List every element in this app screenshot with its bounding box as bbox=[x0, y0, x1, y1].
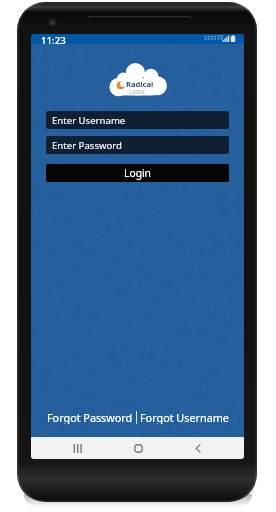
button[interactable]: Recent apps bbox=[62, 437, 92, 459]
button[interactable]: Forgot Password bbox=[44, 406, 136, 428]
button[interactable]: Login bbox=[46, 164, 229, 182]
button[interactable]: Forgot Username bbox=[137, 406, 232, 428]
staticText: Forgot Password bbox=[47, 410, 133, 424]
staticText: Logix bbox=[129, 87, 145, 95]
staticText: Radical bbox=[126, 79, 154, 89]
staticText: Login bbox=[124, 166, 151, 180]
button[interactable]: Back bbox=[183, 437, 213, 459]
button[interactable]: Enter Password bbox=[46, 136, 229, 154]
staticText: Forgot Username bbox=[140, 410, 229, 424]
staticText: Enter Username bbox=[52, 114, 126, 127]
button[interactable]: Home bbox=[123, 437, 153, 459]
staticText: Enter Password bbox=[52, 139, 122, 152]
staticText: 11:23 bbox=[41, 34, 66, 44]
button[interactable]: Enter Username bbox=[46, 111, 229, 129]
